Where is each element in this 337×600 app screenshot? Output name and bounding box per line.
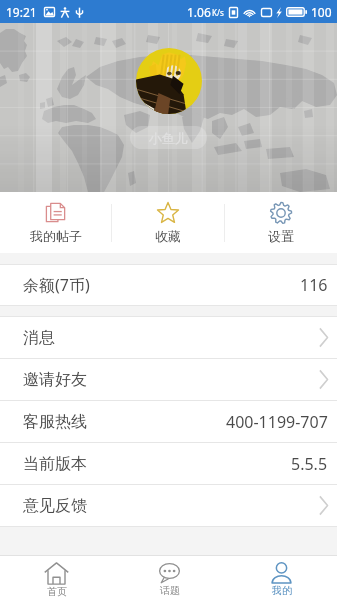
button[interactable]: 邀请好友 [0, 359, 337, 400]
staticText: 当前版本 [23, 454, 87, 474]
staticText: 小鱼儿 [149, 130, 188, 146]
button[interactable]: 当前版本 [0, 443, 337, 484]
staticText: 首页 [47, 585, 67, 598]
button[interactable]: 小鱼儿 [130, 126, 207, 149]
staticText: 收藏 [155, 228, 181, 244]
staticText: 我的帖子 [30, 228, 82, 244]
staticText: 消息 [23, 328, 55, 348]
staticText: 意见反馈 [23, 496, 87, 516]
staticText: 1.06 [187, 4, 211, 20]
button[interactable]: 我的 [225, 556, 337, 600]
staticText: 话题 [160, 584, 180, 597]
button[interactable]: 话题 [113, 556, 225, 600]
staticText: 我的 [272, 584, 292, 597]
button[interactable]: 消息 [0, 317, 337, 358]
button[interactable]: Profile photo [136, 48, 202, 114]
button[interactable]: 我的帖子 [0, 192, 111, 253]
staticText: 5.5.5 [291, 453, 328, 475]
staticText: 19:21 [6, 4, 37, 20]
staticText: 100 [311, 4, 332, 20]
staticText: 116 [300, 274, 328, 296]
button[interactable]: 收藏 [112, 192, 224, 253]
staticText: K/s [212, 7, 224, 18]
staticText: 400-1199-707 [226, 411, 328, 433]
button[interactable]: 设置 [225, 192, 337, 253]
button[interactable]: 首页 [0, 556, 113, 600]
staticText: 客服热线 [23, 412, 87, 432]
staticText: 邀请好友 [23, 370, 87, 390]
staticText: 余额(7币) [23, 274, 90, 296]
button[interactable]: 余额(7币) [0, 265, 337, 305]
staticText: 设置 [268, 228, 294, 244]
button[interactable]: 意见反馈 [0, 485, 337, 526]
button[interactable]: 客服热线 [0, 401, 337, 442]
